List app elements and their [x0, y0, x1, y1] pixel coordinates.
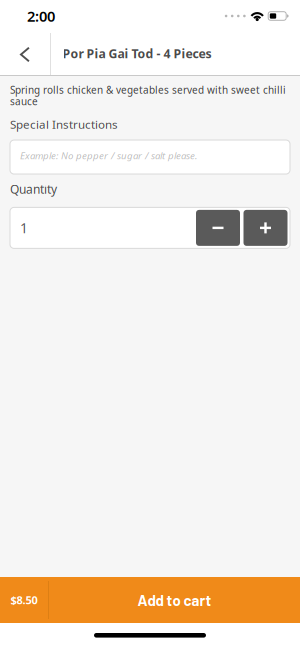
- staticText: sauce: [10, 95, 38, 108]
- staticText: 1: [20, 218, 28, 237]
- staticText: Spring rolls chicken & vegetables served…: [10, 83, 286, 97]
- staticText: Add to cart: [137, 591, 211, 609]
- staticText: Quantity: [10, 181, 57, 197]
- button[interactable]: Back: [0, 33, 50, 76]
- staticText: Por Pia Gai Tod - 4 Pieces: [62, 45, 211, 62]
- button[interactable]: Increase quantity: [243, 210, 287, 246]
- staticText: $8.50: [10, 592, 37, 608]
- button[interactable]: $8.50: [0, 577, 300, 623]
- button[interactable]: Decrease quantity: [196, 210, 240, 246]
- staticText: 2:00: [27, 6, 55, 26]
- staticText: Special Instructions: [10, 116, 118, 132]
- staticText: Example: No pepper / sugar / salt please…: [20, 149, 197, 162]
